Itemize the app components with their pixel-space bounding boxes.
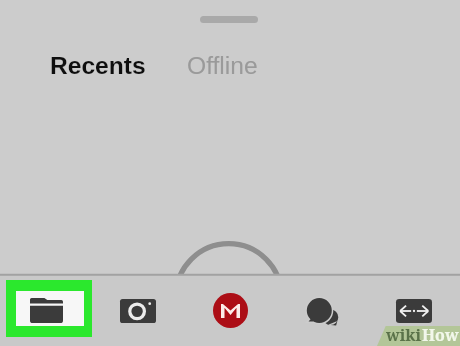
staticText: wiki [386,324,422,344]
staticText: Offline [187,52,258,79]
button[interactable]: Home [194,287,266,333]
staticText: How [422,324,459,344]
button[interactable]: Offline [187,52,258,79]
staticText: Recents [50,52,146,79]
button[interactable]: Cloud drive [6,280,92,337]
button[interactable]: Camera uploads [102,288,174,334]
button[interactable]: Transfers [378,288,450,334]
button[interactable]: Chat [286,289,358,335]
button[interactable]: Recents [50,52,146,79]
